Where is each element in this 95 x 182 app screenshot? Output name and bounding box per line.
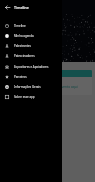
staticText: Patrocinadores	[14, 54, 35, 58]
button[interactable]: Informações Gerais	[0, 82, 62, 92]
button[interactable]: Timeline	[0, 21, 62, 31]
staticText: Expositores e Apoiadores	[14, 65, 49, 69]
button[interactable]: Expositores e Apoiadores	[0, 62, 62, 72]
button[interactable]: Back	[0, 0, 14, 14]
staticText: Parceiros	[14, 75, 27, 79]
staticText: Timeline	[14, 5, 29, 10]
button[interactable]: Parceiros	[0, 72, 62, 82]
staticText: Minha agenda	[14, 34, 34, 38]
staticText: Sobre esse app	[14, 95, 35, 99]
staticText: Timeline	[14, 24, 26, 28]
staticText: Bate-papo com os organizadores do evento…	[5, 85, 78, 89]
staticText: Informações Gerais	[14, 85, 41, 89]
button[interactable]: Minha agenda	[0, 31, 62, 41]
button[interactable]: Patrocinadores	[0, 51, 62, 61]
button[interactable]: Sobre esse app	[0, 92, 62, 102]
button[interactable]: Palestrantes	[0, 41, 62, 51]
staticText: Palestrantes	[14, 44, 31, 48]
staticText: 09:00 - 10:00	[5, 72, 23, 76]
